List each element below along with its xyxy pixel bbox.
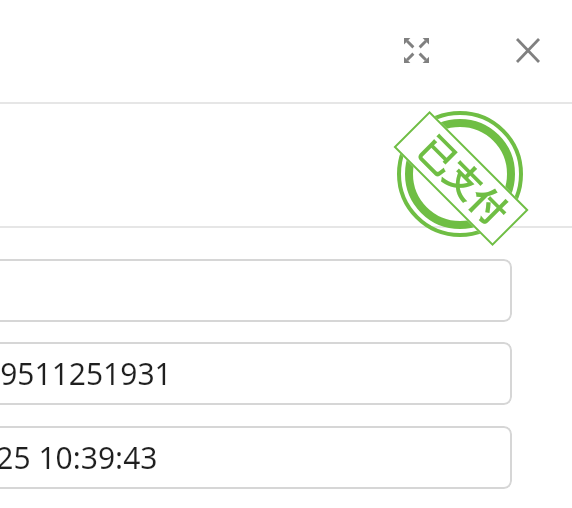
button[interactable]: 2025 10:39:43 (0, 426, 512, 489)
button[interactable]: 39511251931 (0, 342, 512, 405)
staticText: 已支付 (408, 133, 514, 240)
staticText: 2025 10:39:43 (0, 437, 158, 478)
button[interactable] (0, 259, 512, 322)
button[interactable]: Close (504, 26, 552, 74)
button[interactable]: Fullscreen (392, 26, 440, 74)
staticText: 39511251931 (0, 353, 172, 394)
